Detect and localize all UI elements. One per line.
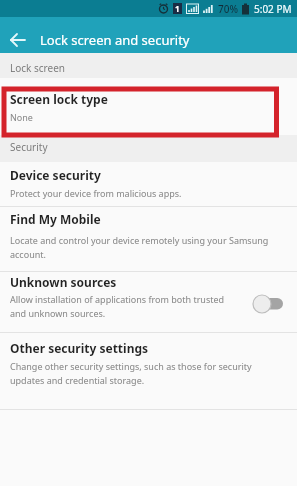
- staticText: None: [10, 111, 33, 123]
- staticText: Lock screen and security: [40, 31, 190, 49]
- staticText: Find My Mobile: [10, 211, 101, 227]
- staticText: Locate and control your device remotely …: [10, 234, 269, 260]
- button[interactable]: Device security: [0, 162, 297, 206]
- staticText: Unknown sources: [10, 274, 117, 290]
- staticText: Allow installation of applications from …: [10, 293, 225, 319]
- staticText: Other security settings: [10, 340, 149, 356]
- button[interactable]: Screen lock type: [0, 78, 297, 135]
- staticText: 5:02 PM: [254, 2, 292, 16]
- staticText: Change other security settings, such as …: [10, 360, 252, 386]
- staticText: Security: [10, 140, 48, 154]
- button[interactable]: Find My Mobile: [0, 207, 297, 271]
- staticText: Screen lock type: [10, 91, 108, 107]
- button[interactable]: [0, 26, 36, 53]
- staticText: Protect your device from malicious apps.: [10, 187, 182, 199]
- button[interactable]: Unknown sources: [0, 272, 297, 332]
- staticText: Lock screen: [10, 61, 66, 75]
- staticText: 70%: [218, 2, 238, 16]
- button[interactable]: [249, 288, 287, 316]
- staticText: Device security: [10, 167, 101, 183]
- button[interactable]: Other security settings: [0, 333, 297, 409]
- staticText: 1: [175, 3, 180, 14]
